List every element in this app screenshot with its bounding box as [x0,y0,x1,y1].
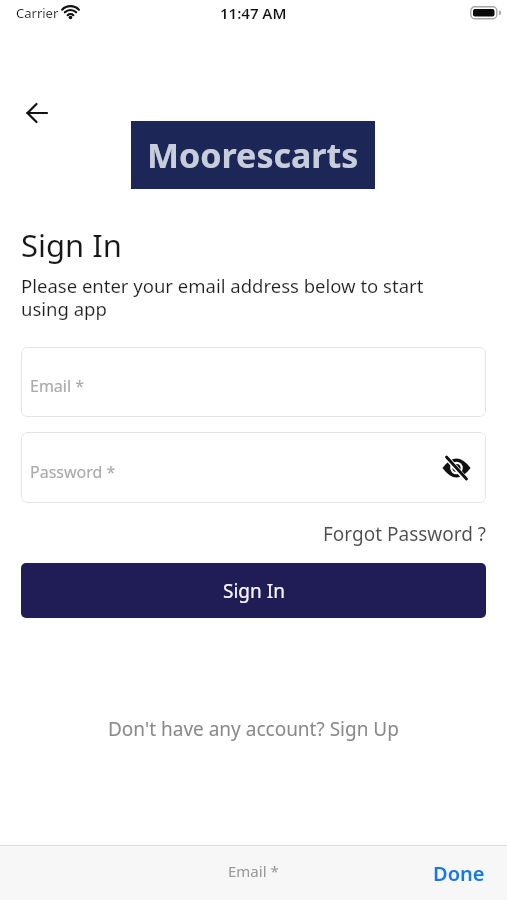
button[interactable]: Sign In [21,563,486,618]
button[interactable]: Forgot Password ? [323,521,487,547]
button[interactable]: Moorescarts [131,121,375,189]
staticText: Done [433,860,485,887]
button[interactable]: Don't have any account? Sign Up [108,716,399,742]
staticText: Sign In [21,224,122,266]
button[interactable] [20,97,54,129]
staticText: Email * [228,861,279,881]
staticText: Email * [30,375,85,397]
staticText: Moorescarts [147,132,359,178]
button[interactable]: Email * [21,347,486,417]
button[interactable]: Password * [21,432,486,503]
staticText: Password * [30,461,116,483]
staticText: 11:47 AM [220,3,287,23]
staticText: Sign In [223,578,285,604]
button[interactable]: Done [433,860,485,887]
staticText: Carrier [16,4,59,22]
staticText: Please enter your email address below to… [21,273,424,322]
button[interactable] [440,453,472,483]
